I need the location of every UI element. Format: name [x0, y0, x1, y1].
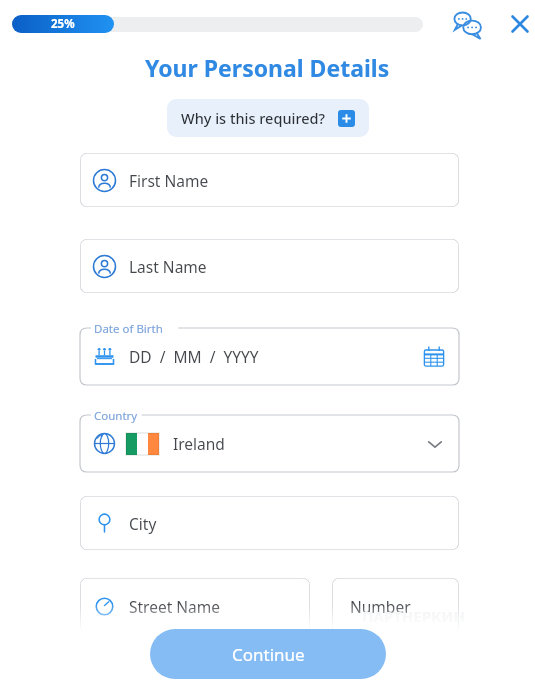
- staticText: Number: [350, 596, 411, 617]
- button[interactable]: Last Name: [80, 239, 459, 293]
- button[interactable]: Continue: [150, 629, 386, 679]
- button[interactable]: 25%: [12, 15, 114, 33]
- staticText: First Name: [129, 170, 209, 191]
- button[interactable]: Why is this required?: [167, 99, 369, 137]
- staticText: Street Name: [129, 596, 221, 617]
- button[interactable]: Chat support: [450, 7, 484, 41]
- button[interactable]: Number: [332, 578, 459, 634]
- button[interactable]: First Name: [80, 153, 459, 207]
- staticText: Country: [94, 408, 138, 424]
- button[interactable]: Close: [506, 10, 534, 38]
- button[interactable]: Country: [80, 406, 459, 472]
- staticText: City: [129, 513, 157, 534]
- staticText: Why is this required?: [181, 108, 326, 128]
- staticText: ПАРТНЕРКИН: [362, 606, 465, 626]
- staticText: 25%: [51, 16, 75, 32]
- button[interactable]: Street Name: [80, 578, 310, 634]
- staticText: Your Personal Details: [145, 52, 390, 83]
- staticText: DD / MM / YYYY: [129, 346, 259, 367]
- button[interactable]: City: [80, 496, 459, 550]
- staticText: Ireland: [173, 433, 225, 454]
- button[interactable]: Date of Birth: [80, 319, 459, 385]
- staticText: Date of Birth: [94, 321, 163, 337]
- staticText: Continue: [232, 643, 305, 666]
- staticText: Last Name: [129, 256, 207, 277]
